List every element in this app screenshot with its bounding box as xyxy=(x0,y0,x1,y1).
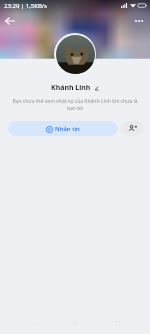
button[interactable]: Edit name xyxy=(93,85,100,92)
staticText: Nhắn tin xyxy=(55,125,80,133)
button[interactable]: More options xyxy=(130,12,148,30)
button[interactable]: Back xyxy=(1,12,19,30)
staticText: 23:29 | 1,5KB/s xyxy=(4,2,47,10)
staticText: Bạn chưa thể xem nhật ký của Khánh Linh … xyxy=(10,98,140,112)
button[interactable]: Add friend xyxy=(121,121,143,136)
staticText: Khánh Linh xyxy=(51,83,91,93)
button[interactable]: Nhắn tin xyxy=(8,121,118,136)
